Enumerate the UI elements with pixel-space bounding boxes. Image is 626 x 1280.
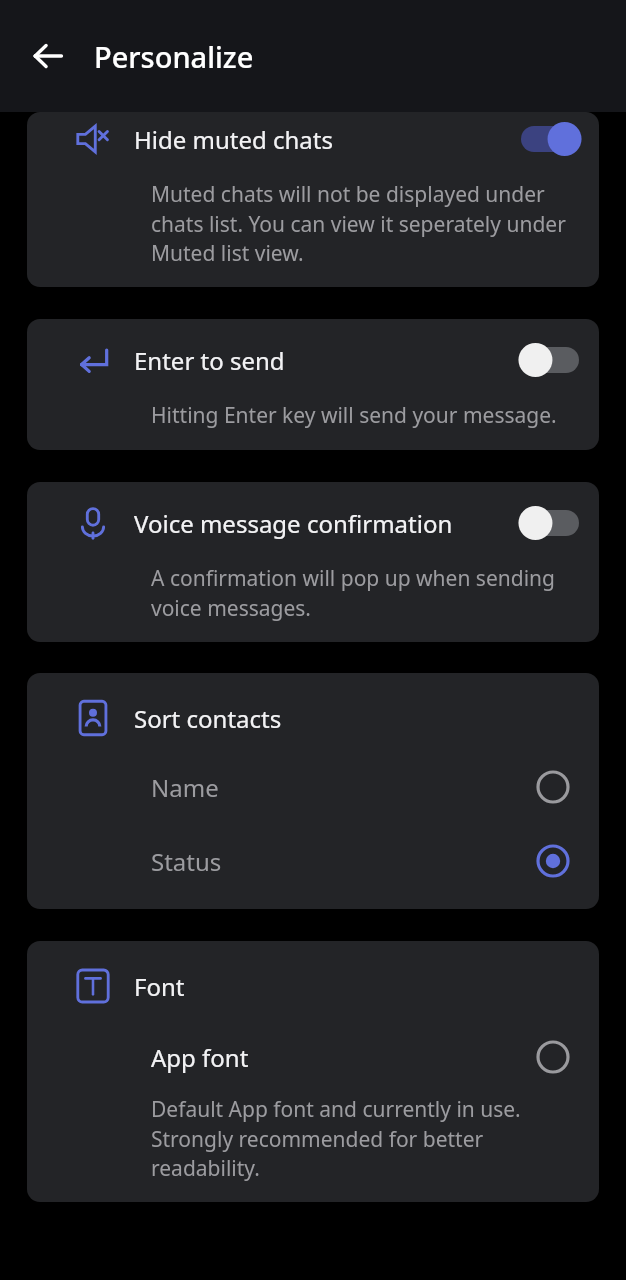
staticText: Muted chats will not be displayed under … xyxy=(151,180,569,267)
staticText: A confirmation will pop up when sending … xyxy=(151,564,569,622)
button[interactable]: Voice message confirmation xyxy=(513,496,587,550)
button[interactable]: App font xyxy=(151,1029,581,1085)
button[interactable]: Font xyxy=(27,941,599,1202)
button[interactable]: Name xyxy=(151,759,581,815)
button[interactable]: Voice message confirmation xyxy=(27,482,599,642)
staticText: Name xyxy=(151,771,525,804)
staticText: Status xyxy=(151,845,525,878)
staticText: App font xyxy=(151,1041,525,1074)
button[interactable]: Status xyxy=(151,833,581,889)
staticText: Voice message confirmation xyxy=(134,507,505,540)
staticText: Hitting Enter key will send your message… xyxy=(151,401,557,430)
button[interactable]: Enter to send xyxy=(27,319,599,450)
button[interactable]: Sort by status xyxy=(525,833,581,889)
button[interactable]: Hide muted chats xyxy=(27,112,599,287)
button[interactable]: Back xyxy=(18,26,78,86)
button[interactable]: Sort contacts xyxy=(27,673,599,909)
staticText: Font xyxy=(134,970,185,1003)
button[interactable]: Sort by name xyxy=(525,759,581,815)
staticText: Default App font and currently in use. S… xyxy=(151,1095,569,1182)
button[interactable]: Select app font xyxy=(525,1029,581,1085)
staticText: Personalize xyxy=(94,37,254,76)
staticText: Hide muted chats xyxy=(134,123,505,156)
button[interactable]: Hide muted chats xyxy=(513,112,587,166)
staticText: Enter to send xyxy=(134,344,505,377)
button[interactable]: Enter to send xyxy=(513,333,587,387)
staticText: Sort contacts xyxy=(134,702,282,735)
